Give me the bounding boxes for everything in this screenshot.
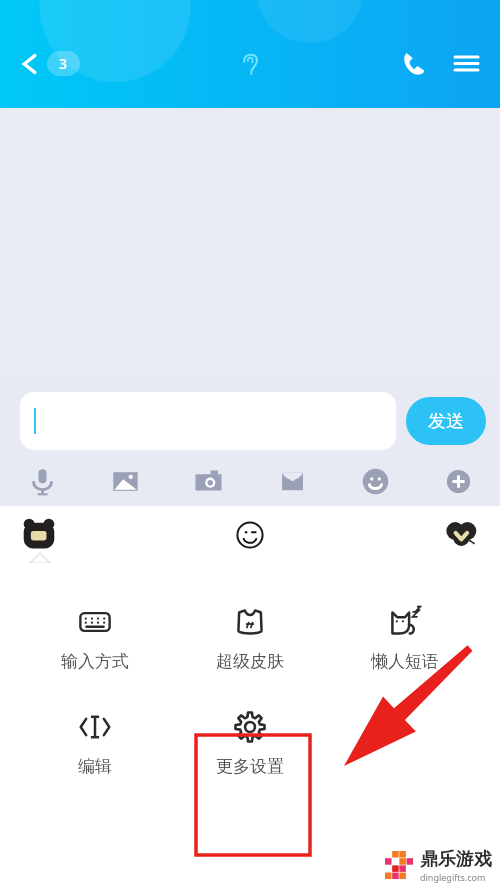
button[interactable]: Menu: [445, 42, 488, 85]
staticText: 更多设置: [216, 756, 284, 777]
button[interactable]: Camera: [186, 459, 230, 503]
button[interactable]: 懒人短语: [345, 599, 465, 678]
staticText: 输入方式: [61, 651, 129, 672]
button[interactable]: Gallery: [103, 459, 147, 503]
button[interactable]: Emoji: [353, 459, 397, 503]
staticText: 鼎乐游戏: [420, 848, 492, 871]
button[interactable]: Baidu input logo: [16, 512, 62, 558]
button[interactable]: 输入方式: [35, 599, 155, 678]
button[interactable]: 更多设置: [190, 704, 310, 783]
button[interactable]: 超级皮肤: [190, 599, 310, 678]
button[interactable]: Hide keyboard: [438, 512, 484, 558]
button[interactable]: Listen: [230, 43, 270, 83]
button[interactable]: 发送: [406, 397, 486, 445]
button[interactable]: Back, 3 unread: [12, 43, 86, 84]
staticText: 发送: [428, 410, 464, 433]
button[interactable]: Call: [392, 42, 435, 85]
button[interactable]: Red packet: [270, 459, 314, 503]
staticText: 超级皮肤: [216, 651, 284, 672]
staticText: dinglegifts.com: [420, 871, 486, 883]
staticText: 编辑: [78, 756, 112, 777]
staticText: 懒人短语: [371, 651, 439, 672]
staticText: 3: [59, 54, 68, 73]
button[interactable]: Message input: [20, 392, 396, 450]
button[interactable]: Voice input: [20, 459, 64, 503]
button[interactable]: Emoji panel: [227, 512, 273, 558]
button[interactable]: More options: [436, 459, 480, 503]
button[interactable]: 编辑: [35, 704, 155, 783]
